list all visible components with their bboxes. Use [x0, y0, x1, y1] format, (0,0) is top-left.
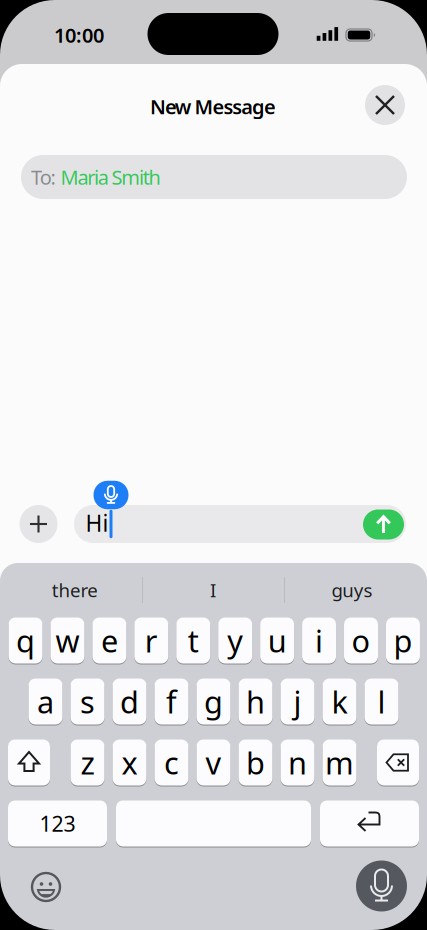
staticText: m: [325, 742, 354, 783]
button[interactable]: l: [364, 677, 398, 725]
button[interactable]: c: [154, 738, 188, 786]
staticText: a: [37, 681, 54, 722]
button[interactable]: h: [238, 677, 272, 725]
button[interactable]: To:: [21, 155, 407, 199]
button[interactable]: I: [148, 570, 278, 610]
staticText: b: [246, 742, 265, 783]
button[interactable]: v: [196, 738, 230, 786]
button[interactable]: b: [238, 738, 272, 786]
button[interactable]: Dictation: [356, 860, 407, 911]
button[interactable]: o: [344, 616, 378, 664]
staticText: 123: [39, 809, 75, 838]
button[interactable]: t: [176, 616, 210, 664]
button[interactable]: Send: [363, 509, 404, 539]
staticText: z: [80, 742, 94, 783]
staticText: Hi: [85, 508, 108, 538]
staticText: r: [145, 620, 158, 661]
button[interactable]: z: [70, 738, 104, 786]
button[interactable]: Space: [116, 799, 311, 847]
button[interactable]: Delete: [377, 738, 419, 786]
staticText: x: [121, 742, 137, 783]
button[interactable]: x: [112, 738, 146, 786]
staticText: Maria Smith: [61, 164, 161, 190]
button[interactable]: Shift: [8, 738, 50, 786]
button[interactable]: j: [280, 677, 314, 725]
staticText: guys: [332, 578, 372, 602]
staticText: f: [166, 681, 177, 722]
staticText: c: [164, 742, 179, 783]
button[interactable]: a: [28, 677, 62, 725]
button[interactable]: Close: [365, 85, 405, 125]
staticText: n: [288, 742, 307, 783]
button[interactable]: f: [154, 677, 188, 725]
staticText: d: [120, 681, 139, 722]
staticText: i: [315, 620, 323, 661]
staticText: s: [80, 681, 95, 722]
button[interactable]: m: [322, 738, 356, 786]
staticText: e: [101, 620, 118, 661]
staticText: I: [210, 578, 216, 602]
button[interactable]: Emoji: [32, 873, 60, 901]
button[interactable]: guys: [287, 570, 417, 610]
staticText: New Message: [150, 93, 276, 120]
button[interactable]: q: [8, 616, 42, 664]
button[interactable]: Numbers: [8, 799, 107, 847]
staticText: o: [351, 620, 370, 661]
staticText: q: [16, 620, 35, 661]
staticText: l: [377, 681, 385, 722]
staticText: j: [293, 681, 301, 722]
staticText: h: [246, 681, 265, 722]
button[interactable]: y: [218, 616, 252, 664]
staticText: 10:00: [54, 22, 104, 48]
button[interactable]: g: [196, 677, 230, 725]
button[interactable]: w: [50, 616, 84, 664]
staticText: there: [52, 578, 98, 602]
button[interactable]: s: [70, 677, 104, 725]
staticText: t: [188, 620, 199, 661]
button[interactable]: u: [260, 616, 294, 664]
button[interactable]: i: [302, 616, 336, 664]
button[interactable]: p: [386, 616, 420, 664]
button[interactable]: n: [280, 738, 314, 786]
button[interactable]: Return: [320, 799, 419, 847]
staticText: w: [55, 620, 79, 661]
button[interactable]: Add attachment: [19, 505, 57, 543]
staticText: To:: [31, 164, 56, 190]
staticText: p: [393, 620, 412, 661]
staticText: v: [205, 742, 221, 783]
staticText: u: [268, 620, 287, 661]
button[interactable]: k: [322, 677, 356, 725]
staticText: y: [227, 620, 243, 661]
button[interactable]: there: [10, 570, 140, 610]
button[interactable]: r: [134, 616, 168, 664]
staticText: k: [331, 681, 347, 722]
button[interactable]: e: [92, 616, 126, 664]
staticText: g: [204, 681, 223, 722]
button[interactable]: d: [112, 677, 146, 725]
